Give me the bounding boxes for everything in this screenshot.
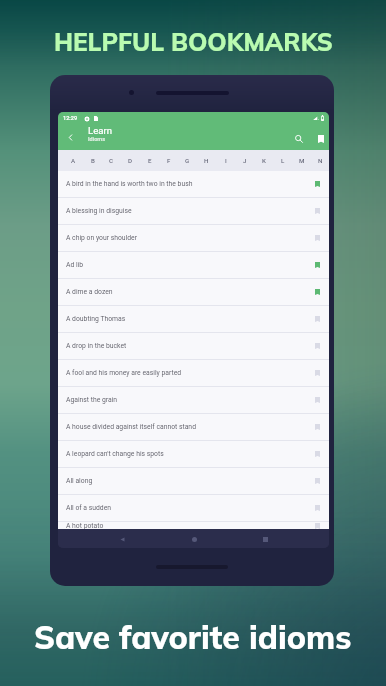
button[interactable]: A drop in the bucket [58,333,329,359]
staticText: A chip on your shoulder [66,234,137,242]
staticText: K [262,157,266,164]
button[interactable]: K [254,150,273,171]
button[interactable]: E [140,150,159,171]
button[interactable]: B [83,150,102,171]
staticText: A drop in the bucket [66,342,127,350]
staticText: A fool and his money are easily parted [66,369,182,377]
button[interactable]: A chip on your shoulder [58,225,329,251]
staticText: All of a sudden [66,504,112,512]
button[interactable]: Ad lib [58,252,329,278]
staticText: Learn [88,125,113,136]
button[interactable]: A leopard can't change his spots [58,441,329,467]
button[interactable]: I [216,150,235,171]
button[interactable]: Against the grain [58,387,329,413]
button[interactable]: A [64,150,83,171]
staticText: A doubting Thomas [66,315,126,323]
staticText: G [185,157,190,164]
staticText: Idioms [88,136,106,143]
button[interactable]: G [178,150,197,171]
button[interactable]: F [159,150,178,171]
button[interactable]: L [273,150,292,171]
button[interactable]: M [292,150,311,171]
staticText: Against the grain [66,396,118,404]
staticText: L [281,157,285,164]
button[interactable]: Bookmarks [312,130,329,147]
staticText: I [225,157,227,164]
button[interactable]: C [102,150,121,171]
staticText: A blessing in disguise [66,207,132,215]
staticText: A bird in the hand is worth two in the b… [66,180,193,188]
button[interactable]: Back [114,531,130,547]
button[interactable]: All along [58,468,329,494]
staticText: D [128,157,133,164]
button[interactable]: D [121,150,140,171]
staticText: H [204,157,209,164]
staticText: All along [66,477,93,485]
button[interactable]: N [311,150,329,171]
button[interactable]: A fool and his money are easily parted [58,360,329,386]
staticText: J [243,157,247,164]
staticText: B [91,157,95,164]
button[interactable]: J [235,150,254,171]
staticText: A leopard can't change his spots [66,450,164,458]
button[interactable]: A house divided against itself cannot st… [58,414,329,440]
button[interactable]: A dime a dozen [58,279,329,305]
button[interactable]: Back [62,129,78,145]
staticText: E [148,157,152,164]
staticText: 12:29 [63,115,78,122]
button[interactable]: A hot potato [58,522,329,529]
staticText: F [167,157,171,164]
staticText: A [71,157,76,164]
staticText: Save favorite idioms [34,617,352,657]
button[interactable]: A blessing in disguise [58,198,329,224]
button[interactable]: Search [290,130,307,147]
button[interactable]: A doubting Thomas [58,306,329,332]
button[interactable]: H [197,150,216,171]
staticText: M [299,157,305,164]
staticText: A house divided against itself cannot st… [66,423,196,431]
staticText: A hot potato [66,522,104,529]
button[interactable]: Recents [257,531,273,547]
staticText: A dime a dozen [66,288,113,296]
staticText: C [109,157,114,164]
button[interactable]: Home [186,531,202,547]
staticText: HELPFUL BOOKMARKS [54,26,333,57]
staticText: N [318,157,323,164]
staticText: Ad lib [66,261,84,269]
button[interactable]: All of a sudden [58,495,329,521]
button[interactable]: A bird in the hand is worth two in the b… [58,171,329,197]
